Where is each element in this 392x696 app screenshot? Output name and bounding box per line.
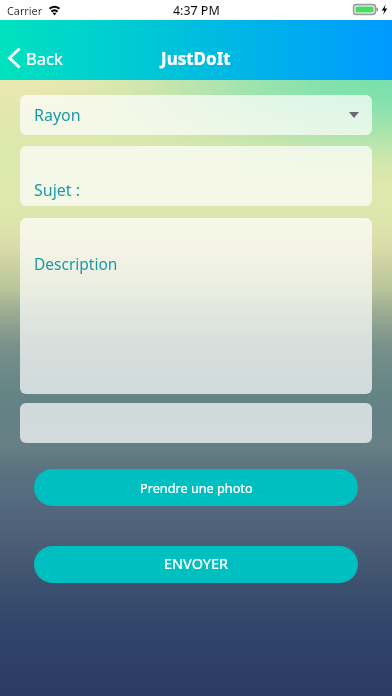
button[interactable]: Back <box>0 39 73 77</box>
button[interactable]: Description <box>20 218 372 394</box>
staticText: ENVOYER <box>164 553 229 573</box>
staticText: Sujet : <box>34 179 81 201</box>
other: Wi-Fi <box>47 3 62 15</box>
button[interactable]: Sujet : <box>20 146 372 206</box>
other: Battery charging <box>353 4 387 16</box>
button[interactable]: ENVOYER <box>34 546 358 583</box>
staticText: Back <box>26 47 63 69</box>
button[interactable] <box>20 403 372 443</box>
staticText: Carrier <box>7 3 43 18</box>
other: Open dropdown <box>349 112 359 118</box>
staticText: JustDoIt <box>161 47 231 70</box>
button[interactable]: Rayon <box>20 95 372 135</box>
button[interactable]: Prendre une photo <box>34 469 358 506</box>
staticText: 4:37 PM <box>173 2 220 19</box>
staticText: Prendre une photo <box>140 479 253 496</box>
staticText: Rayon <box>34 104 81 126</box>
staticText: Description <box>34 253 118 274</box>
other: Back <box>8 48 20 68</box>
